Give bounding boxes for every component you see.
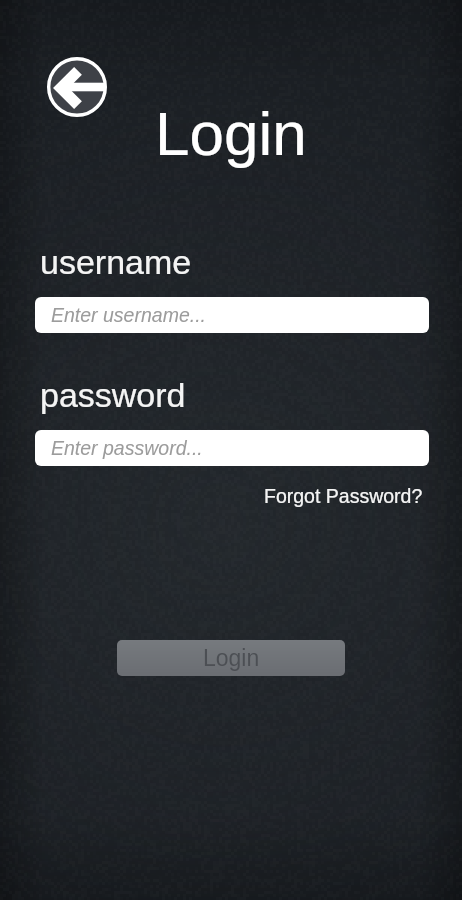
- button[interactable]: Enter username...: [35, 297, 429, 333]
- staticText: username: [40, 243, 192, 281]
- button[interactable]: Login: [117, 640, 345, 676]
- button[interactable]: Enter password...: [35, 430, 429, 466]
- staticText: Enter password...: [51, 437, 203, 459]
- staticText: Login: [203, 645, 260, 671]
- button[interactable]: Forgot Password?: [264, 485, 429, 507]
- staticText: Enter username...: [51, 304, 206, 326]
- button[interactable]: Back: [45, 55, 109, 119]
- staticText: password: [40, 376, 186, 414]
- staticText: Login: [155, 99, 307, 168]
